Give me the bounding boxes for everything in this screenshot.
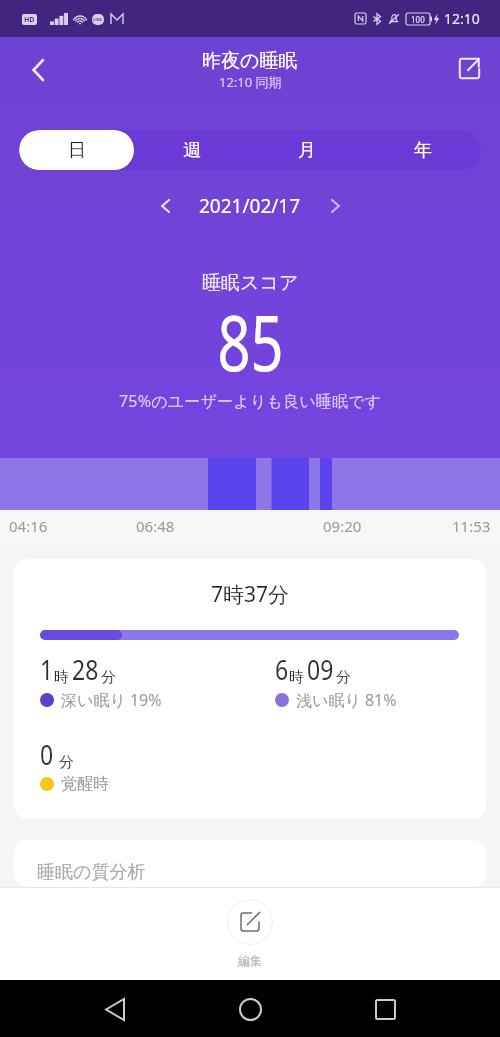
staticText: 11:53 xyxy=(452,516,491,536)
button[interactable]: Back xyxy=(16,49,58,91)
button[interactable]: 睡眠の質分析 xyxy=(14,840,486,887)
staticText: 編集 xyxy=(238,953,262,968)
staticText: 100 xyxy=(411,14,425,25)
staticText: 2021/02/17 xyxy=(199,193,301,219)
staticText: 分 xyxy=(59,753,74,772)
staticText: 睡眠の質分析 xyxy=(37,861,146,884)
button[interactable]: Recents xyxy=(365,989,405,1029)
button[interactable]: 月 xyxy=(249,130,365,170)
staticText: 月 xyxy=(298,139,316,162)
staticText: HD xyxy=(24,15,35,25)
staticText: 6 xyxy=(275,650,289,688)
button[interactable]: 週 xyxy=(134,130,249,170)
staticText: 時 xyxy=(289,668,304,687)
staticText: 覚醒時 xyxy=(61,774,109,794)
staticText: 28 xyxy=(72,650,99,688)
staticText: 75%のユーザーよりも良い睡眠です xyxy=(119,390,382,412)
button[interactable]: Previous day xyxy=(148,189,182,223)
button[interactable]: Back xyxy=(95,989,135,1029)
staticText: 09 xyxy=(307,650,334,688)
staticText: 日 xyxy=(68,139,86,162)
staticText: 0 xyxy=(40,735,54,773)
staticText: 浅い眠り 81% xyxy=(296,689,397,711)
button[interactable]: 編集 xyxy=(227,888,273,968)
staticText: 睡眠スコア xyxy=(202,271,299,295)
staticText: 1 xyxy=(40,650,54,688)
staticText: 12:10 同期 xyxy=(219,73,282,91)
button[interactable]: 日 xyxy=(19,130,134,170)
staticText: 週 xyxy=(183,139,201,162)
staticText: 09:20 xyxy=(323,516,362,536)
staticText: 深い眠り 19% xyxy=(61,689,162,711)
button[interactable]: Next day xyxy=(318,189,352,223)
staticText: 12:10 xyxy=(444,9,480,28)
staticText: 年 xyxy=(414,139,432,162)
staticText: 7時37分 xyxy=(211,580,290,609)
staticText: 分 xyxy=(101,668,116,687)
button[interactable]: Home xyxy=(230,989,270,1029)
staticText: 分 xyxy=(336,668,351,687)
staticText: 06:48 xyxy=(136,516,175,536)
staticText: 04:16 xyxy=(9,516,48,536)
staticText: LINE xyxy=(93,17,103,22)
button[interactable]: Share xyxy=(448,47,490,89)
button[interactable]: 年 xyxy=(365,130,481,170)
staticText: 昨夜の睡眠 xyxy=(202,49,298,73)
staticText: 85 xyxy=(217,290,283,394)
staticText: 時 xyxy=(54,668,69,687)
